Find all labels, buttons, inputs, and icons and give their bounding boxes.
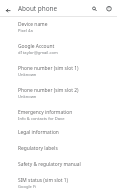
- staticText: Emergency information: [18, 109, 73, 116]
- button[interactable]: Back: [2, 4, 14, 16]
- staticText: Google Fi: [18, 184, 37, 190]
- button[interactable]: SIM status (sim slot 1): [0, 176, 117, 195]
- staticText: Google Account: [18, 43, 55, 50]
- staticText: Phone number (sim slot 2): [18, 87, 79, 94]
- staticText: Pixel 4a: [18, 28, 33, 34]
- staticText: Safety & regulatory manual: [18, 161, 81, 168]
- button[interactable]: Legal information: [0, 128, 117, 144]
- staticText: Unknown: [18, 94, 37, 100]
- button[interactable]: Google Account: [0, 40, 117, 62]
- staticText: Legal information: [18, 129, 59, 136]
- button[interactable]: Device name: [0, 18, 117, 40]
- staticText: Phone number (sim slot 1): [18, 65, 79, 72]
- button[interactable]: Emergency information: [0, 106, 117, 128]
- staticText: SIM status (sim slot 1): [18, 177, 69, 184]
- button[interactable]: Phone number (sim slot 1): [0, 62, 117, 84]
- staticText: Info & contacts for Dave: [18, 116, 65, 122]
- button[interactable]: Help: [102, 3, 115, 16]
- button[interactable]: Search: [88, 3, 101, 16]
- staticText: About phone: [18, 4, 58, 13]
- staticText: Regulatory labels: [18, 145, 58, 152]
- staticText: Unknown: [18, 72, 37, 78]
- button[interactable]: Safety & regulatory manual: [0, 160, 117, 176]
- staticText: Device name: [18, 21, 48, 28]
- staticText: d1taylor@gmail.com: [18, 50, 58, 56]
- button[interactable]: Phone number (sim slot 2): [0, 84, 117, 106]
- button[interactable]: Regulatory labels: [0, 144, 117, 160]
